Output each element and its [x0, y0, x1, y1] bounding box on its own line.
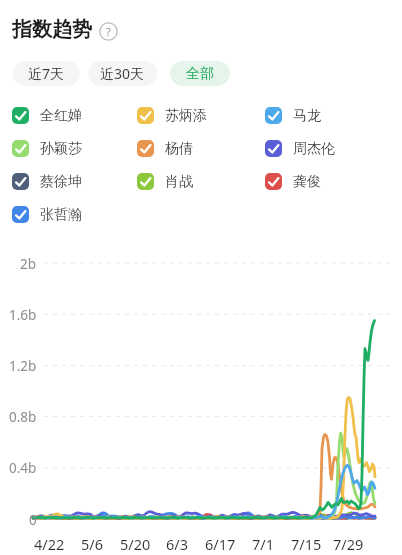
button[interactable]: 全红婵 [12, 99, 137, 132]
button[interactable]: 周杰伦 [265, 132, 395, 165]
button[interactable]: 孙颖莎 [12, 132, 137, 165]
staticText: 蔡徐坤 [40, 173, 82, 191]
staticText: 7/1 [252, 534, 274, 554]
staticText: 马龙 [293, 107, 321, 125]
staticText: 5/20 [120, 534, 151, 554]
staticText: 0.8b [9, 408, 37, 426]
button[interactable]: 近7天 [13, 61, 80, 86]
staticText: 张哲瀚 [40, 206, 82, 224]
staticText: 1.6b [9, 306, 37, 324]
button[interactable]: 近30天 [88, 61, 157, 86]
staticText: 近30天 [100, 64, 145, 83]
staticText: 0 [29, 511, 37, 529]
staticText: 指数趋势 [12, 17, 92, 42]
staticText: 4/22 [34, 534, 65, 554]
staticText: 苏炳添 [165, 107, 207, 125]
staticText: 杨倩 [165, 140, 193, 158]
staticText: 全部 [186, 65, 214, 83]
button[interactable]: 马龙 [265, 99, 395, 132]
staticText: ? [106, 24, 111, 39]
staticText: 6/3 [166, 534, 188, 554]
staticText: 7/15 [291, 534, 322, 554]
staticText: 0.4b [9, 459, 37, 477]
staticText: 近7天 [28, 64, 65, 83]
button[interactable]: 苏炳添 [137, 99, 265, 132]
staticText: 龚俊 [293, 173, 321, 191]
staticText: 6/17 [205, 534, 236, 554]
button[interactable]: ? [99, 22, 118, 41]
staticText: 5/6 [81, 534, 103, 554]
button[interactable]: 杨倩 [137, 132, 265, 165]
staticText: 孙颖莎 [40, 140, 82, 158]
button[interactable]: 肖战 [137, 165, 265, 198]
staticText: 1.2b [9, 357, 37, 375]
button[interactable]: 张哲瀚 [12, 198, 137, 231]
staticText: 全红婵 [40, 107, 82, 125]
staticText: 7/29 [333, 534, 364, 554]
button[interactable]: 全部 [170, 61, 230, 86]
staticText: 肖战 [165, 173, 193, 191]
button[interactable]: 蔡徐坤 [12, 165, 137, 198]
staticText: 周杰伦 [293, 140, 335, 158]
button[interactable]: 龚俊 [265, 165, 395, 198]
staticText: 2b [20, 255, 37, 273]
